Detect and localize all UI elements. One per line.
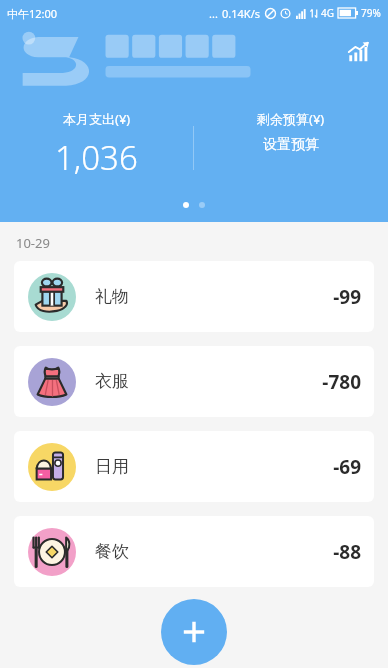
staticText: -69	[333, 454, 361, 480]
staticText: 中午12:00	[7, 6, 58, 21]
staticText: 1,036	[55, 135, 138, 180]
staticText: 本月支出(¥)	[63, 110, 131, 128]
staticText: -88	[333, 539, 361, 565]
staticText: 0.14K/s	[222, 6, 260, 21]
staticText: 餐饮	[95, 541, 129, 562]
button[interactable]: 餐饮	[14, 516, 374, 587]
staticText: 日用	[95, 456, 129, 477]
button[interactable]: 剩余预算(¥)	[194, 110, 388, 154]
button[interactable]: Add expense	[161, 599, 227, 665]
staticText: -99	[333, 284, 361, 310]
button[interactable]: Statistics	[340, 34, 376, 70]
staticText: 79%	[361, 6, 381, 20]
button[interactable]: 礼物	[14, 261, 374, 332]
staticText: 剩余预算(¥)	[257, 110, 325, 128]
staticText: -780	[322, 369, 361, 395]
staticText: 4G	[321, 6, 334, 20]
staticText: 礼物	[95, 286, 129, 307]
button[interactable]: 日用	[14, 431, 374, 502]
button[interactable]: 衣服	[14, 346, 374, 417]
staticText: 衣服	[95, 371, 129, 392]
staticText: 设置预算	[263, 136, 319, 154]
staticText: ...	[209, 6, 218, 21]
staticText: 10-29	[16, 234, 50, 252]
